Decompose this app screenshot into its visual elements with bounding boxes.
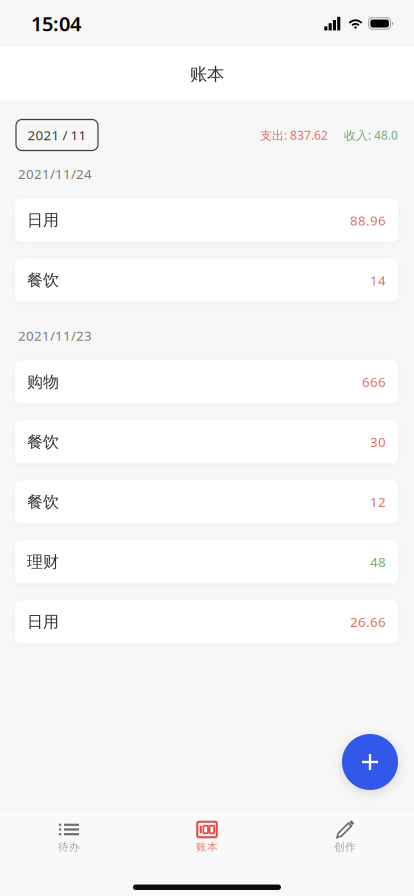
staticText: 2021/11/23 (18, 327, 92, 344)
staticText: 创作 (334, 840, 356, 854)
staticText: 26.66 (350, 613, 386, 631)
button[interactable]: 餐饮 (15, 480, 398, 523)
button[interactable]: 账本 Ledger (138, 808, 276, 868)
staticText: 30 (370, 433, 386, 451)
staticText: 支出: 837.62 (260, 127, 328, 143)
button[interactable]: 待办 To-do (0, 808, 138, 868)
staticText: 理财 (27, 552, 59, 572)
staticText: 购物 (27, 372, 59, 392)
button[interactable]: 餐饮 (15, 259, 398, 302)
button[interactable]: 2021 / 11 (16, 119, 98, 150)
staticText: 餐饮 (27, 432, 59, 452)
staticText: 48 (370, 553, 386, 571)
button[interactable]: 创作 Create (276, 808, 414, 868)
staticText: 88.96 (350, 211, 386, 229)
button[interactable]: Add record (342, 734, 398, 790)
staticText: 666 (362, 373, 386, 391)
staticText: 收入: 48.0 (344, 127, 398, 143)
button[interactable]: 日用 (15, 600, 398, 643)
staticText: 账本 (190, 64, 224, 85)
staticText: 日用 (27, 210, 59, 230)
staticText: 2021/11/24 (18, 165, 92, 183)
staticText: 12 (370, 493, 386, 511)
staticText: 日用 (27, 612, 59, 632)
button[interactable]: 理财 (15, 540, 398, 583)
staticText: 待办 (58, 840, 80, 854)
staticText: 餐饮 (27, 492, 59, 512)
button[interactable]: 购物 (15, 360, 398, 403)
staticText: 餐饮 (27, 270, 59, 290)
button[interactable]: 日用 (15, 199, 398, 242)
staticText: 账本 (196, 840, 218, 854)
staticText: 14 (370, 271, 386, 289)
staticText: 2021 / 11 (27, 126, 86, 144)
staticText: 15:04 (31, 10, 81, 37)
button[interactable]: 餐饮 (15, 420, 398, 463)
